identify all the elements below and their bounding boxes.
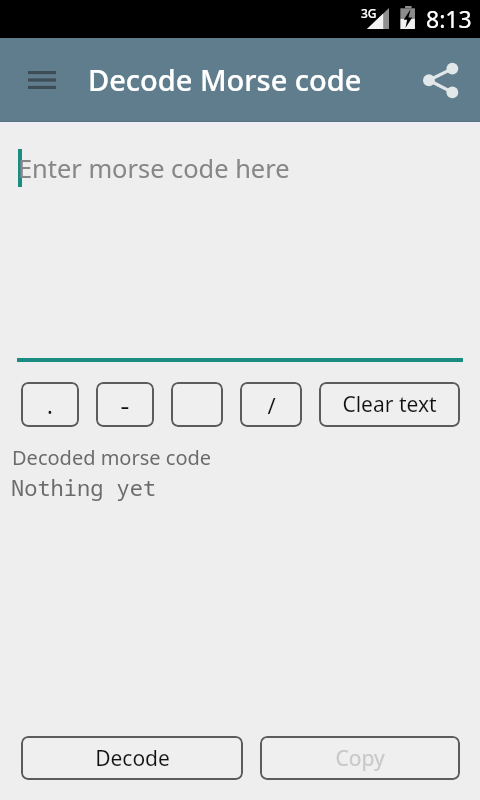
- staticText: Clear text: [342, 390, 437, 419]
- staticText: Decoded morse code: [12, 444, 212, 471]
- button[interactable]: Open navigation menu: [14, 52, 70, 108]
- staticText: Nothing yet: [11, 472, 157, 502]
- button[interactable]: .: [21, 382, 79, 427]
- staticText: Enter morse code here: [18, 151, 290, 186]
- staticText: Copy: [335, 744, 385, 773]
- staticText: 3G: [361, 5, 377, 21]
- staticText: Decode: [95, 744, 170, 773]
- button[interactable]: Clear text: [319, 382, 460, 427]
- button[interactable]: -: [96, 382, 154, 427]
- staticText: .: [43, 389, 57, 420]
- button[interactable]: Insert space: [171, 382, 223, 427]
- staticText: Decode Morse code: [88, 60, 362, 99]
- staticText: 8:13: [426, 3, 472, 34]
- button[interactable]: /: [240, 382, 302, 427]
- button[interactable]: Copy: [260, 736, 460, 780]
- button[interactable]: Share: [420, 54, 464, 98]
- staticText: -: [118, 389, 132, 420]
- button[interactable]: Decode: [21, 736, 243, 780]
- staticText: /: [267, 390, 276, 420]
